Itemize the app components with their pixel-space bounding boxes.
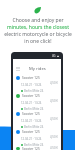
staticText: Berlin Mitte 24	[24, 143, 44, 147]
staticText: Scooter 125	[22, 147, 40, 150]
staticText: 4,50 €	[50, 135, 58, 139]
staticText: 12.04.21 · 13:24	[21, 101, 42, 105]
button[interactable]: Menu	[16, 67, 20, 71]
staticText: Scooter 125	[22, 94, 40, 98]
staticText: Berlin Mitte 24	[24, 107, 44, 111]
button[interactable]: Scooter 125	[13, 111, 61, 129]
staticText: 4,50 €	[50, 99, 58, 103]
staticText: 12.04.21 · 13:24	[21, 119, 42, 123]
staticText: electric motorcycle or bicycle	[4, 31, 72, 38]
staticText: 4,50 €	[50, 146, 58, 149]
staticText: Scooter 125	[22, 112, 40, 116]
staticText: Scooter 125	[22, 130, 40, 134]
staticText: Berlin Mitte 24	[24, 125, 44, 129]
staticText: 4G	[52, 54, 56, 58]
staticText: in one click!	[24, 38, 52, 45]
staticText: minutes, hours the closest	[7, 24, 69, 31]
staticText: My rides	[29, 66, 46, 72]
button[interactable]: Scooter 125	[13, 129, 61, 147]
staticText: 12.04.21 · 13:24	[21, 137, 42, 141]
staticText: 4,50 €	[50, 117, 58, 121]
button[interactable]: Scooter 125	[13, 147, 61, 150]
staticText: Berlin Mitte 24	[24, 89, 44, 93]
staticText: Scooter 125	[22, 76, 40, 80]
staticText: 4,50 €	[50, 81, 58, 85]
button[interactable]: Scooter 125	[13, 75, 61, 93]
button[interactable]: Scooter 125	[13, 93, 61, 111]
staticText: Choose and enjoy per	[12, 17, 64, 24]
staticText: 12.04.21 · 13:24	[21, 83, 42, 87]
